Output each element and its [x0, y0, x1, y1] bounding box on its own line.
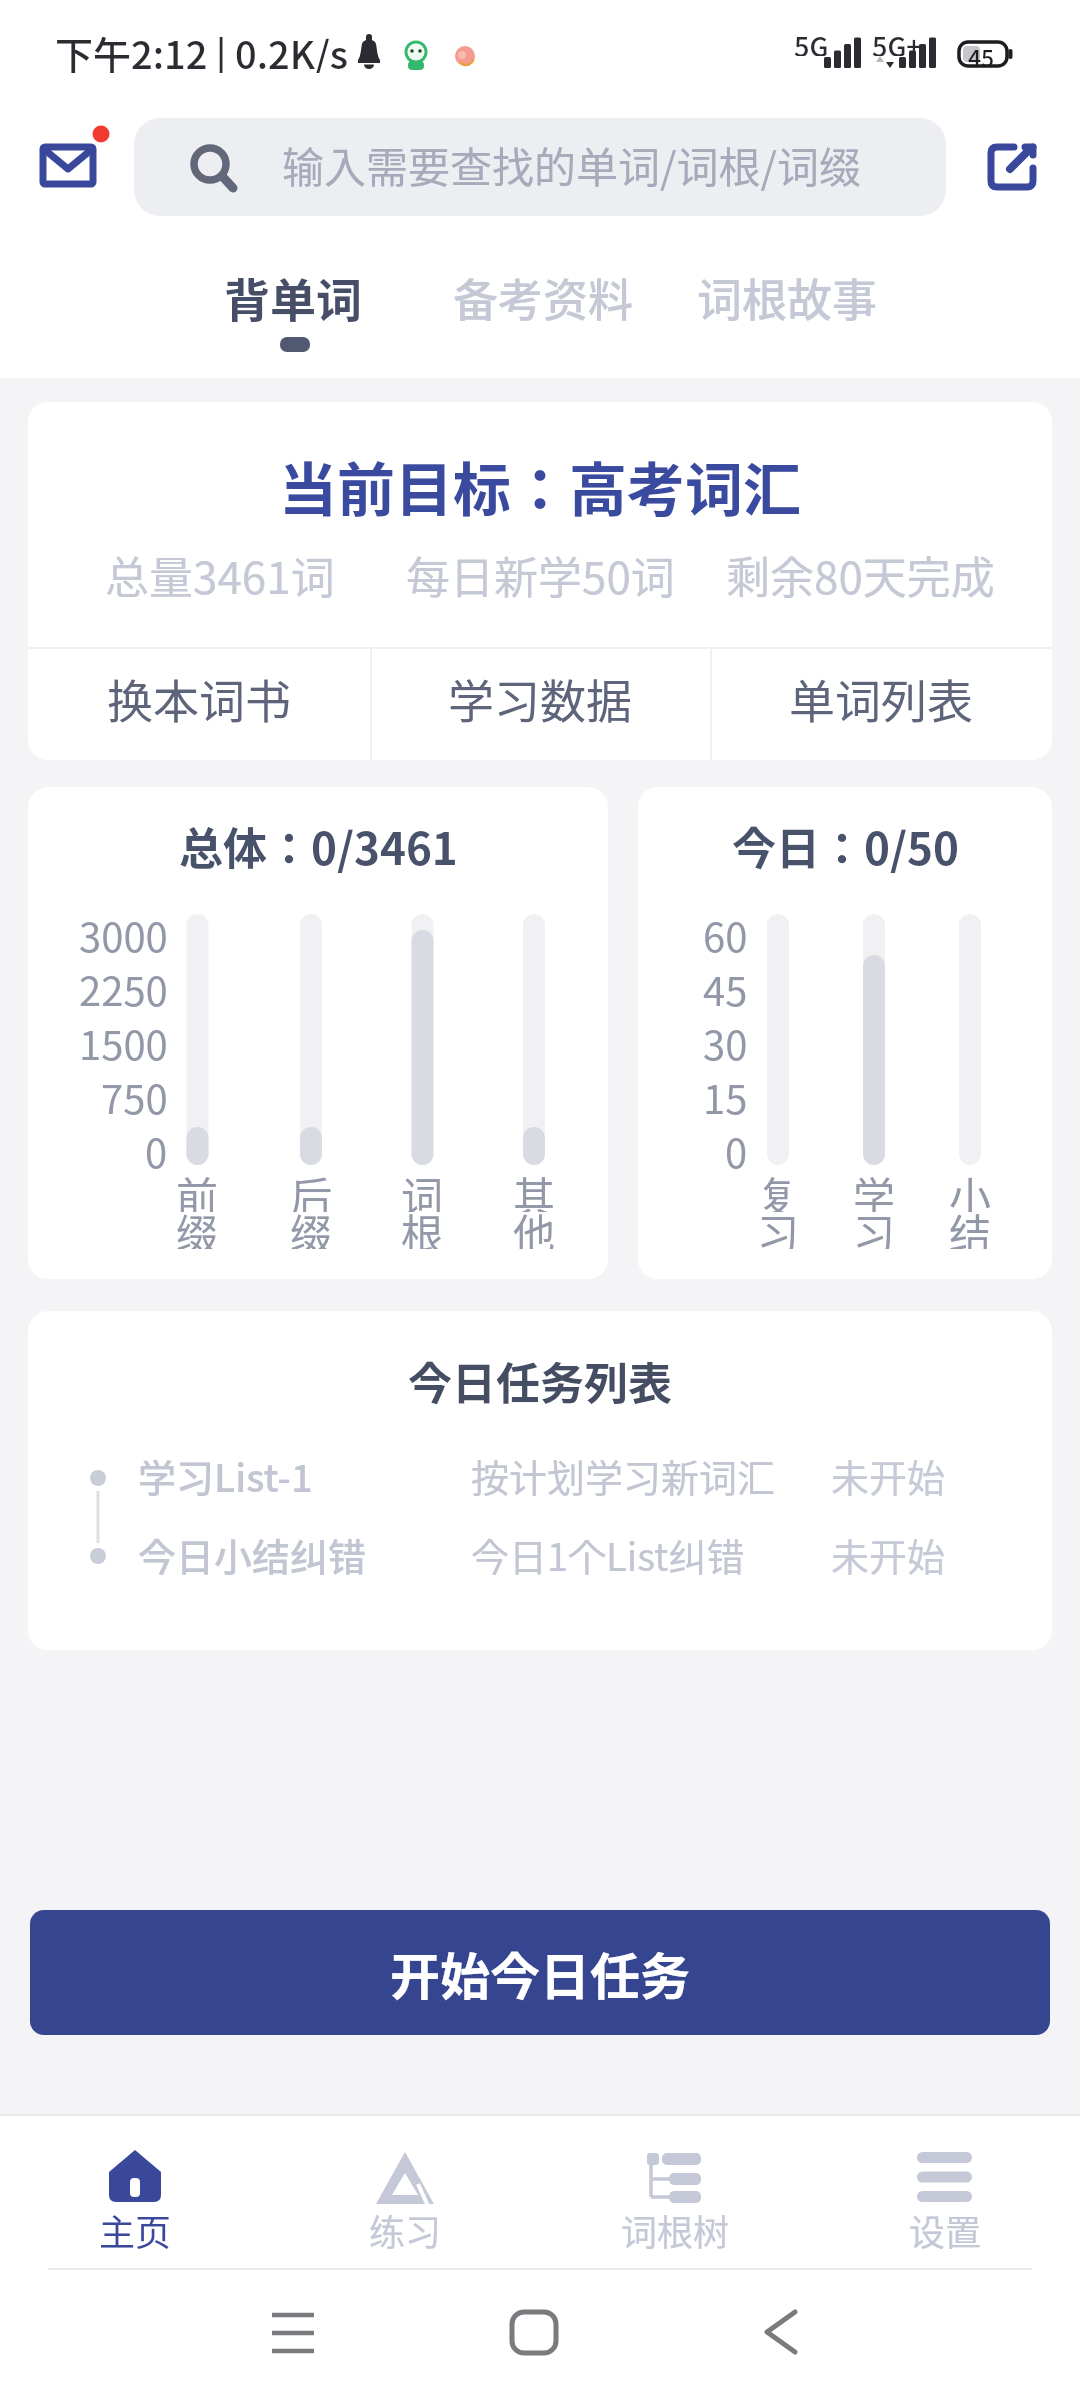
button[interactable]: 设置: [810, 2116, 1080, 2269]
staticText: 开始今日任务: [390, 1937, 690, 2009]
staticText: 设置: [909, 2204, 982, 2252]
staticText: 换本词书: [107, 665, 291, 732]
button[interactable]: 输入需要查找的单词/词根/词缀: [134, 118, 946, 216]
button[interactable]: [505, 2300, 571, 2366]
staticText: 每日新学50词: [406, 543, 675, 599]
staticText: 30: [703, 1014, 748, 1070]
button[interactable]: [984, 138, 1042, 196]
staticText: 词根故事: [697, 265, 878, 330]
button[interactable]: 词根故事: [688, 258, 886, 336]
staticText: 下午2:12 | 0.2K/s: [55, 25, 349, 73]
button[interactable]: 开始今日任务: [30, 1910, 1050, 2035]
staticText: 15: [703, 1068, 748, 1124]
staticText: 习: [853, 1201, 896, 1249]
button[interactable]: 换本词书: [28, 649, 370, 760]
button[interactable]: 单词列表: [710, 649, 1052, 760]
staticText: 小: [949, 1164, 992, 1212]
staticText: 单词列表: [789, 665, 973, 732]
staticText: 词根树: [621, 2204, 730, 2252]
staticText: 总量3461词: [105, 543, 335, 599]
button[interactable]: 备考资料: [444, 258, 642, 336]
staticText: 今日任务列表: [408, 1349, 672, 1411]
staticText: 练习: [369, 2204, 442, 2252]
button[interactable]: 学习List-1: [28, 1445, 1052, 1505]
button[interactable]: 词根树: [540, 2116, 810, 2269]
staticText: 背单词: [224, 264, 362, 331]
staticText: 60: [703, 906, 748, 962]
staticText: 学习数据: [448, 665, 632, 732]
staticText: 结: [949, 1201, 992, 1249]
button[interactable]: [36, 122, 114, 188]
staticText: 学: [853, 1164, 896, 1212]
staticText: 前: [176, 1164, 219, 1212]
staticText: 未开始: [831, 1527, 946, 1582]
button[interactable]: 主页: [0, 2116, 270, 2269]
button[interactable]: 学习数据: [370, 649, 710, 760]
staticText: 0: [725, 1122, 748, 1178]
staticText: 复: [757, 1164, 800, 1212]
staticText: 今日1个List纠错: [471, 1527, 745, 1582]
staticText: 当前目标：高考词汇: [279, 444, 802, 520]
button[interactable]: [260, 2300, 326, 2366]
staticText: 根: [401, 1201, 444, 1249]
staticText: 45: [703, 960, 748, 1016]
staticText: 总体：0/3461: [179, 814, 458, 876]
staticText: 习: [757, 1201, 800, 1249]
staticText: 1500: [79, 1014, 168, 1070]
staticText: 输入需要查找的单词/词根/词缀: [282, 134, 861, 195]
staticText: 备考资料: [453, 265, 634, 330]
staticText: 3000: [79, 906, 168, 962]
staticText: 5G+: [872, 26, 922, 56]
staticText: 未开始: [831, 1448, 946, 1503]
button[interactable]: 今日小结纠错: [28, 1524, 1052, 1584]
staticText: 缀: [290, 1201, 333, 1249]
staticText: 词: [401, 1164, 444, 1212]
button[interactable]: [750, 2300, 816, 2366]
button[interactable]: 练习: [270, 2116, 540, 2269]
staticText: 学习List-1: [138, 1448, 313, 1503]
staticText: 0: [145, 1122, 168, 1178]
staticText: 剩余80天完成: [726, 543, 995, 599]
staticText: 2250: [79, 960, 168, 1016]
staticText: 主页: [99, 2204, 172, 2252]
staticText: 今日小结纠错: [138, 1527, 367, 1582]
staticText: 5G: [794, 26, 829, 56]
staticText: 今日：0/50: [732, 814, 959, 876]
staticText: 45: [968, 40, 995, 68]
staticText: 他: [513, 1201, 556, 1249]
staticText: 按计划学习新词汇: [471, 1448, 776, 1503]
staticText: 其: [513, 1164, 556, 1212]
button[interactable]: 背单词: [200, 258, 386, 336]
staticText: 缀: [176, 1201, 219, 1249]
staticText: 后: [290, 1164, 333, 1212]
staticText: 750: [101, 1068, 168, 1124]
